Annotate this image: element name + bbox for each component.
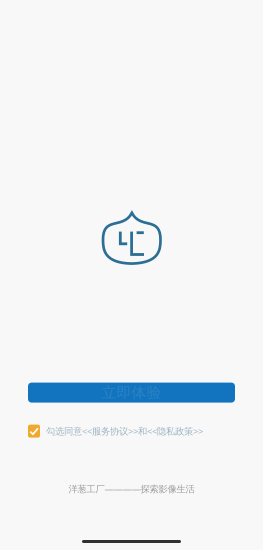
staticText: 洋葱工厂————探索影像生活 [68, 483, 194, 495]
staticText: 勾选同意<<服务协议>>和<<隐私政策>> [46, 425, 203, 437]
button[interactable]: 立即体验 [28, 383, 235, 403]
button[interactable]: Agree to the service agreement and priva… [28, 425, 40, 438]
staticText: 立即体验 [101, 384, 161, 402]
button[interactable]: 勾选同意<<服务协议>>和<<隐私政策>> [40, 425, 203, 437]
